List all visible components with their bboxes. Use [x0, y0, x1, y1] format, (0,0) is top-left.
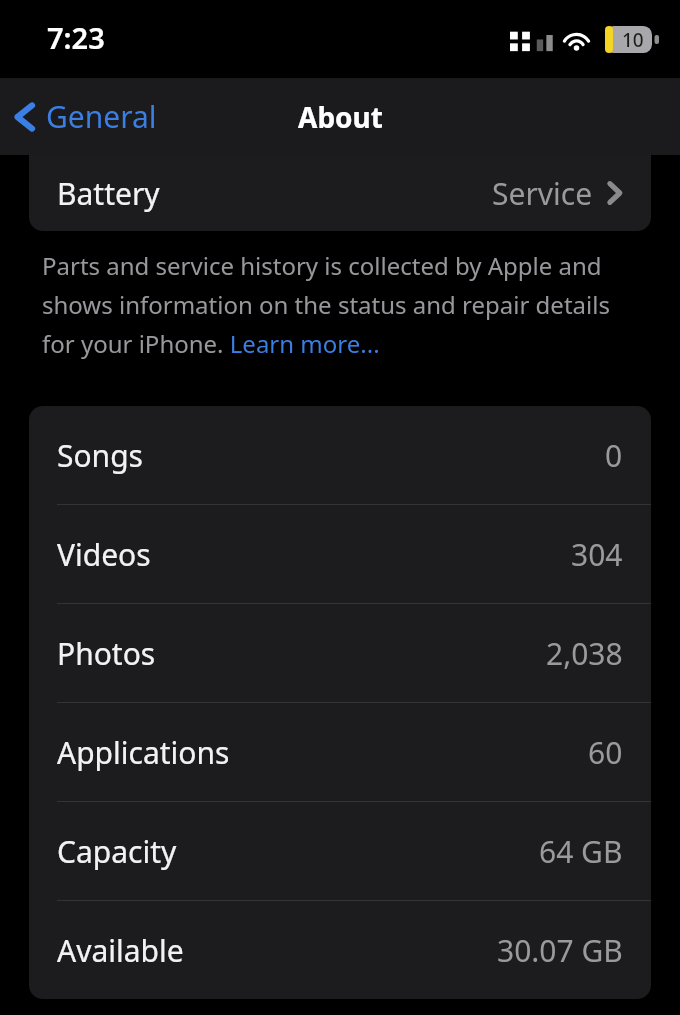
staticText: 60: [588, 732, 623, 773]
staticText: 304: [571, 534, 623, 575]
staticText: Available: [57, 930, 184, 971]
staticText: Photos: [57, 633, 156, 674]
staticText: 10: [622, 27, 644, 53]
staticText: Applications: [57, 732, 230, 773]
button[interactable]: Capacity: [29, 802, 651, 900]
staticText: 0: [605, 435, 623, 476]
staticText: Videos: [57, 534, 151, 575]
staticText: 2,038: [546, 633, 623, 674]
button[interactable]: Battery: [29, 155, 651, 231]
button[interactable]: Videos: [29, 505, 651, 603]
button[interactable]: Photos: [29, 604, 651, 702]
staticText: General: [46, 96, 157, 137]
staticText: 30.07 GB: [497, 930, 623, 971]
staticText: Battery: [57, 173, 160, 214]
button[interactable]: Available: [29, 901, 651, 999]
button[interactable]: General: [0, 88, 169, 145]
other: Open battery service details: [607, 180, 623, 206]
staticText: About: [298, 98, 383, 136]
staticText: Songs: [57, 435, 143, 476]
staticText: 7:23: [47, 18, 105, 57]
staticText: Service: [492, 173, 593, 214]
button[interactable]: Applications: [29, 703, 651, 801]
staticText: Parts and service history is collected b…: [42, 249, 638, 360]
button[interactable]: Songs: [29, 406, 651, 504]
staticText: 64 GB: [539, 831, 623, 872]
staticText: Capacity: [57, 831, 177, 872]
